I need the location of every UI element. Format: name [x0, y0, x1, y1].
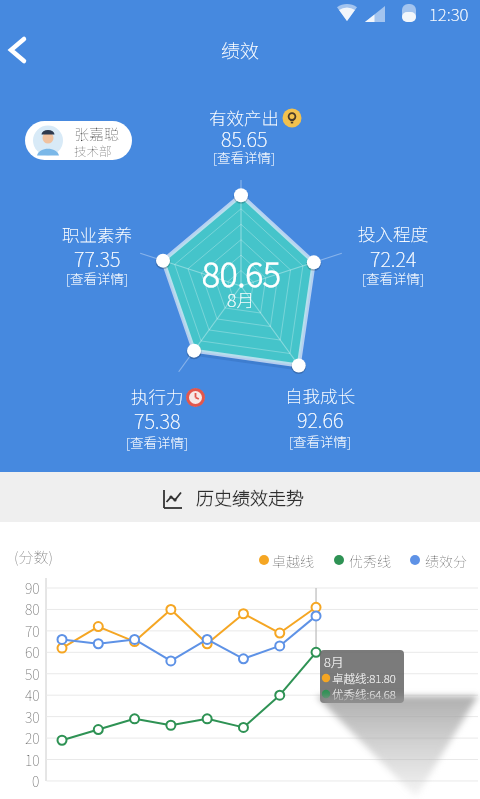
staticText: 30: [25, 707, 40, 727]
staticText: 绩效分: [425, 551, 467, 571]
staticText: 40: [25, 685, 40, 705]
staticText: 77.35: [74, 244, 121, 273]
staticText: 80.65: [202, 248, 281, 297]
staticText: 有效产出: [209, 105, 279, 130]
staticText: 72.24: [370, 244, 417, 273]
staticText: 10: [25, 750, 40, 770]
staticText: 职业素养: [62, 222, 132, 247]
staticText: 优秀线: [349, 551, 391, 571]
staticText: 80: [25, 599, 40, 619]
staticText: [查看详情]: [289, 431, 352, 451]
staticText: 50: [25, 664, 40, 684]
staticText: 92.66: [297, 405, 344, 434]
staticText: (分数): [14, 546, 53, 568]
staticText: 执行力: [131, 384, 184, 409]
staticText: 90: [25, 578, 40, 598]
staticText: 20: [25, 728, 40, 748]
button[interactable]: [查看详情]: [273, 265, 480, 291]
button[interactable]: 张嘉聪: [25, 121, 132, 160]
staticText: [查看详情]: [213, 147, 276, 167]
staticText: 0: [32, 771, 40, 791]
staticText: 卓越线: [272, 551, 314, 571]
staticText: 绩效: [221, 36, 260, 64]
staticText: 85.65: [221, 124, 268, 153]
staticText: 张嘉聪: [74, 123, 120, 145]
button[interactable]: [查看详情]: [200, 428, 440, 454]
staticText: 历史绩效走势: [196, 484, 304, 510]
staticText: 8月: [324, 652, 344, 671]
staticText: 70: [25, 621, 40, 641]
staticText: 投入程度: [358, 221, 428, 246]
staticText: [查看详情]: [66, 268, 129, 288]
staticText: 60: [25, 642, 40, 662]
button[interactable]: [查看详情]: [37, 429, 277, 455]
staticText: 技术部: [74, 141, 112, 159]
button[interactable]: [查看详情]: [124, 144, 364, 170]
staticText: 优秀线:64.68: [332, 686, 396, 703]
staticText: [查看详情]: [126, 432, 189, 452]
staticText: 12:30: [429, 1, 469, 26]
staticText: 8月: [227, 286, 255, 312]
staticText: 75.38: [134, 406, 181, 435]
staticText: 卓越线:81.80: [332, 670, 396, 687]
button[interactable]: [2, 34, 36, 66]
button[interactable]: [查看详情]: [0, 265, 217, 291]
staticText: 自我成长: [285, 383, 355, 408]
staticText: [查看详情]: [362, 268, 425, 288]
